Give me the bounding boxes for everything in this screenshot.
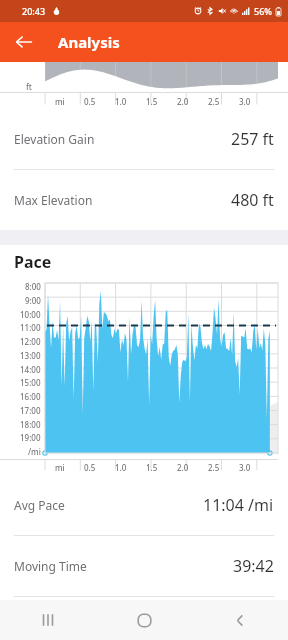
staticText: 0.5 <box>84 96 96 107</box>
staticText: 3.0 <box>239 462 251 473</box>
button[interactable]: Avg Pace <box>0 475 288 535</box>
staticText: 1.0 <box>115 96 127 107</box>
staticText: 2.0 <box>177 96 189 107</box>
staticText: 14:00 <box>20 364 41 375</box>
staticText: Analysis <box>58 32 120 52</box>
staticText: 3.0 <box>239 96 251 107</box>
button[interactable]: Back <box>192 600 288 640</box>
staticText: 20:43 <box>22 5 46 17</box>
staticText: 8:00 <box>25 281 41 292</box>
button[interactable]: Max Elevation <box>0 170 288 230</box>
staticText: 16:00 <box>20 391 41 402</box>
staticText: 11:04 /mi <box>203 494 274 516</box>
staticText: 19:00 <box>20 432 41 443</box>
staticText: mi <box>55 96 65 107</box>
staticText: 257 ft <box>231 128 274 150</box>
button[interactable]: Home <box>96 600 192 640</box>
staticText: 1.5 <box>146 96 158 107</box>
staticText: 2.0 <box>177 462 189 473</box>
staticText: 15:00 <box>20 377 41 388</box>
staticText: 0.5 <box>84 462 96 473</box>
button[interactable]: Recents <box>0 600 96 640</box>
staticText: 2.5 <box>208 462 220 473</box>
staticText: Max Elevation <box>14 192 93 208</box>
staticText: Moving Time <box>14 558 87 574</box>
staticText: 17:00 <box>20 405 41 416</box>
staticText: mi <box>55 462 65 473</box>
staticText: Elevation Gain <box>14 131 95 147</box>
staticText: 39:42 <box>233 555 274 577</box>
staticText: 13:00 <box>20 350 41 361</box>
staticText: 18:00 <box>20 419 41 430</box>
button[interactable]: Elevation Gain <box>0 109 288 169</box>
button[interactable]: Back <box>6 24 42 60</box>
staticText: Pace <box>14 251 52 273</box>
staticText: 10:00 <box>20 309 41 320</box>
staticText: 11:00 <box>20 322 41 333</box>
staticText: 12:00 <box>20 336 41 347</box>
staticText: Avg Pace <box>14 497 65 513</box>
staticText: 2.5 <box>208 96 220 107</box>
staticText: 9:00 <box>25 295 41 306</box>
staticText: 1.5 <box>146 462 158 473</box>
button[interactable]: Moving Time <box>0 536 288 596</box>
staticText: 56% <box>254 5 272 17</box>
staticText: 480 ft <box>231 189 274 211</box>
staticText: /mi <box>28 446 41 457</box>
staticText: ft <box>26 81 32 92</box>
staticText: 1.0 <box>115 462 127 473</box>
